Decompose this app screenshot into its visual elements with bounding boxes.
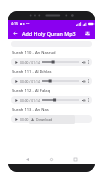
button[interactable]: More options: [86, 60, 90, 64]
staticText: 00:00 / 01:14: [20, 60, 40, 64]
button[interactable]: Volume: [81, 60, 86, 65]
button[interactable]: More options: [86, 79, 90, 83]
button[interactable]: Play: [11, 115, 92, 123]
staticText: 4:15: [11, 21, 19, 26]
staticText: 00:00: [20, 117, 29, 121]
button[interactable]: Volume: [81, 98, 86, 103]
button[interactable]: Play: [13, 59, 19, 65]
staticText: Download: [36, 117, 53, 122]
button[interactable]: Back: [23, 155, 32, 164]
button[interactable]: Back: [11, 29, 20, 38]
button[interactable]: Play: [13, 97, 19, 103]
staticText: Surah 111 - Al Ikhlas: [12, 69, 52, 75]
staticText: 00:00 / 01:14: [20, 98, 40, 102]
button[interactable]: Recent apps: [71, 155, 80, 164]
staticText: Surah 110 - An Nasrud: [12, 50, 56, 56]
button[interactable]: More options: [86, 98, 90, 102]
button[interactable]: Download: [29, 115, 75, 124]
staticText: 00:00 / 01:14: [20, 79, 40, 83]
button[interactable]: Volume: [81, 79, 86, 84]
button[interactable]: Play: [13, 116, 19, 122]
button[interactable]: Play: [11, 58, 92, 66]
button[interactable]: Play: [11, 77, 92, 85]
staticText: •••: [26, 22, 30, 26]
staticText: Surah 113 - An Nas: [12, 107, 49, 113]
button[interactable]: Home: [47, 155, 56, 164]
button[interactable]: Play: [11, 96, 92, 104]
button[interactable]: Play: [13, 78, 19, 84]
staticText: Surah 112 - Al Falaq: [12, 88, 51, 94]
staticText: Add Holy Quran Mp3: [22, 30, 83, 37]
button[interactable]: Settings: [83, 29, 92, 38]
